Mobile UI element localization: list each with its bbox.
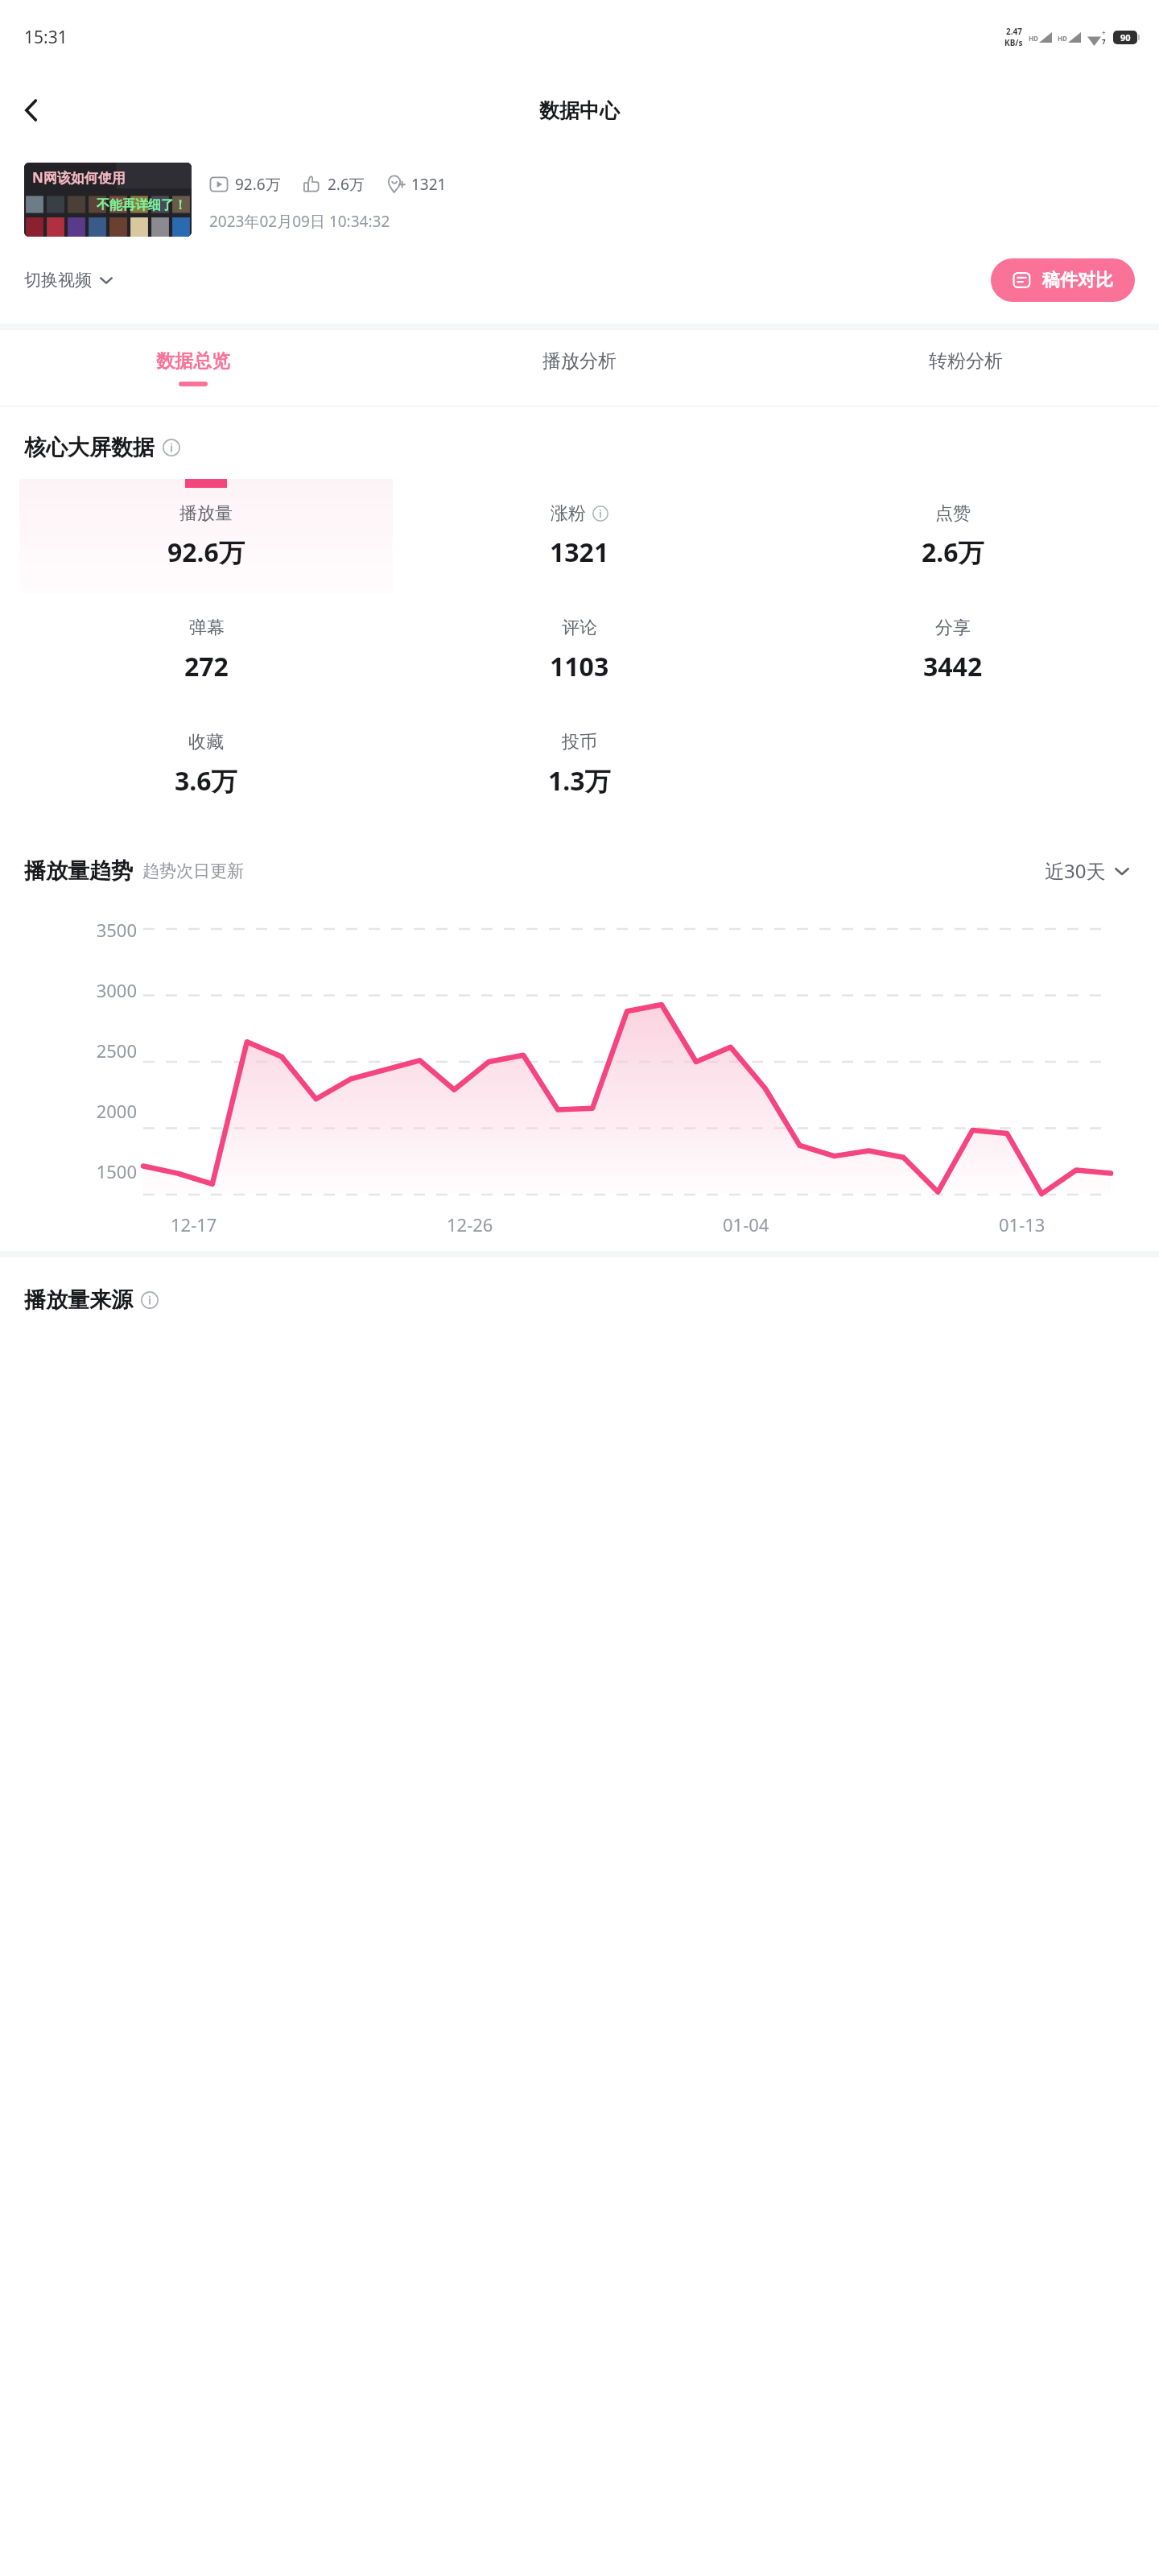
staticText: 播放分析	[542, 349, 617, 373]
staticText: 1321	[550, 535, 609, 570]
staticText: 2000	[96, 1099, 137, 1123]
staticText: 不能再详细了！	[97, 197, 187, 213]
staticText: 播放量趋势	[24, 857, 133, 885]
button[interactable]: 收藏	[19, 708, 393, 822]
staticText: 2023年02月09日 10:34:32	[209, 211, 390, 232]
staticText: 趋势次日更新	[142, 861, 244, 881]
staticText: 切换视频	[24, 270, 92, 291]
staticText: 评论	[562, 617, 597, 639]
button[interactable]: 投币	[393, 708, 766, 822]
staticText: 7	[1102, 37, 1106, 46]
staticText: 12-17	[171, 1212, 217, 1236]
staticText: 01-13	[999, 1212, 1046, 1236]
staticText: 点赞	[935, 502, 971, 525]
staticText: 2.47	[1006, 26, 1022, 37]
button[interactable]: Info	[592, 506, 608, 522]
staticText: N网该如何使用	[32, 168, 126, 187]
button[interactable]: 转粉分析	[773, 330, 1159, 406]
staticText: 弹幕	[189, 617, 225, 639]
staticText: 3442	[923, 649, 983, 684]
staticText: 投币	[562, 731, 597, 753]
staticText: 15:31	[24, 26, 68, 49]
staticText: 核心大屏数据	[24, 434, 155, 461]
staticText: 3500	[96, 918, 137, 942]
staticText: 1500	[96, 1159, 137, 1183]
button[interactable]: 分享	[766, 593, 1140, 708]
button[interactable]: Info	[163, 439, 180, 456]
staticText: 3.6万	[175, 763, 237, 799]
button[interactable]: 稿件对比	[991, 258, 1135, 302]
staticText: 90	[1120, 31, 1131, 43]
button[interactable]: 弹幕	[19, 593, 393, 708]
staticText: 12-26	[447, 1212, 493, 1236]
staticText: 92.6万	[167, 535, 245, 570]
staticText: 转粉分析	[929, 349, 1003, 373]
button[interactable]: Back	[10, 88, 55, 133]
staticText: 2.6万	[922, 535, 984, 570]
staticText: 2.6万	[328, 174, 365, 195]
staticText: KB/s	[1004, 37, 1023, 48]
button[interactable]: 点赞	[766, 479, 1140, 593]
staticText: 1.3万	[548, 763, 611, 799]
staticText: 2500	[96, 1038, 137, 1063]
button[interactable]: 评论	[393, 593, 766, 708]
button[interactable]: 近30天	[1040, 852, 1135, 889]
staticText: 播放量	[179, 502, 233, 525]
staticText: HD	[1058, 34, 1067, 43]
staticText: 1321	[411, 174, 447, 195]
staticText: 92.6万	[235, 174, 281, 195]
staticText: 数据总览	[156, 349, 230, 373]
staticText: HD	[1029, 34, 1038, 43]
button[interactable]: Info	[141, 1291, 159, 1309]
staticText: 播放量来源	[24, 1286, 133, 1314]
staticText: +	[1102, 28, 1106, 37]
staticText: 1103	[550, 649, 609, 684]
staticText: 稿件对比	[1042, 269, 1113, 291]
button[interactable]: 播放量	[19, 479, 393, 593]
button[interactable]: 播放分析	[386, 330, 773, 406]
staticText: 涨粉	[551, 502, 586, 525]
button[interactable]: N网该如何使用	[24, 163, 192, 237]
button[interactable]: 涨粉	[393, 479, 766, 593]
staticText: 收藏	[188, 731, 224, 753]
button[interactable]: 切换视频	[19, 265, 118, 295]
staticText: 3000	[96, 978, 137, 1002]
staticText: 近30天	[1045, 857, 1106, 884]
staticText: 01-04	[723, 1212, 769, 1236]
staticText: 272	[184, 649, 229, 684]
staticText: 数据中心	[539, 98, 620, 123]
staticText: 分享	[935, 617, 971, 639]
button[interactable]: 数据总览	[0, 330, 386, 406]
